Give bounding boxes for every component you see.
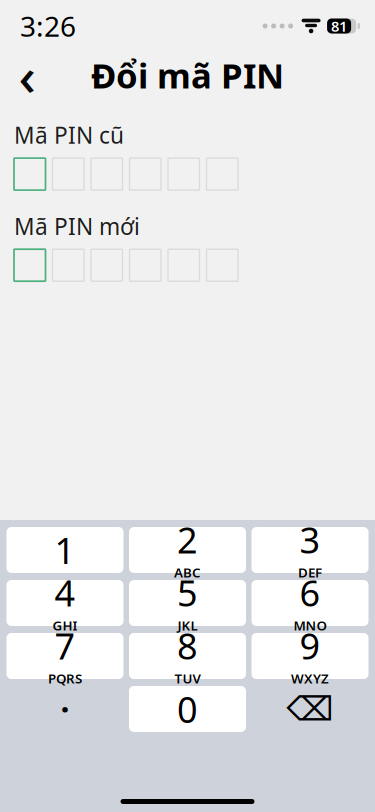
button[interactable]: Back <box>0 51 54 99</box>
staticText: 1 <box>54 526 75 574</box>
staticText: Mã PIN cũ <box>14 120 124 150</box>
staticText: PQRS <box>48 670 82 687</box>
button[interactable]: 4 <box>6 580 123 626</box>
staticText: 0 <box>177 685 198 733</box>
staticText: MNO <box>293 617 326 634</box>
staticText: · <box>60 688 69 730</box>
staticText: 9 <box>299 622 320 669</box>
staticText: ‹ <box>18 40 35 110</box>
staticText: 81 <box>331 16 347 36</box>
button[interactable]: 6 <box>251 580 368 626</box>
staticText: Mã PIN mới <box>14 211 140 241</box>
staticText: WXYZ <box>291 670 329 687</box>
button[interactable]: 0 <box>129 686 246 732</box>
button[interactable]: 9 <box>251 633 368 679</box>
staticText: Đổi mã PIN <box>91 52 284 98</box>
button[interactable]: Period <box>6 686 123 732</box>
staticText: JKL <box>177 617 197 634</box>
button[interactable]: 2 <box>129 527 246 573</box>
button[interactable]: 1 <box>6 527 123 573</box>
staticText: 7 <box>54 622 75 669</box>
staticText: GHI <box>52 617 77 634</box>
button[interactable]: Delete <box>251 686 368 732</box>
staticText: 3 <box>299 516 320 563</box>
staticText: 6 <box>299 569 320 616</box>
staticText: 5 <box>177 569 198 616</box>
staticText: ⌫ <box>286 690 333 728</box>
button[interactable]: 5 <box>129 580 246 626</box>
button[interactable]: 3 <box>251 527 368 573</box>
staticText: 3:26 <box>20 7 76 45</box>
staticText: 2 <box>177 516 198 563</box>
staticText: 8 <box>177 622 198 669</box>
button[interactable]: 7 <box>6 633 123 679</box>
staticText: 4 <box>54 569 75 616</box>
button[interactable]: 8 <box>129 633 246 679</box>
staticText: DEF <box>298 564 322 581</box>
staticText: ABC <box>174 564 201 581</box>
staticText: TUV <box>174 670 200 687</box>
